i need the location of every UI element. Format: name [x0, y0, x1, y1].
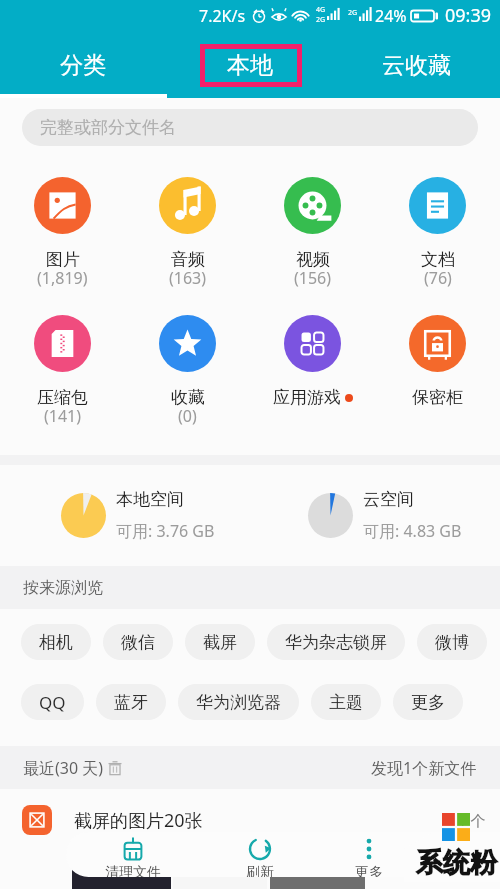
staticText: 微博: [435, 632, 469, 653]
staticText: 本地: [227, 51, 273, 80]
button[interactable]: 相机: [21, 624, 91, 660]
staticText: 华为浏览器: [196, 692, 281, 713]
staticText: (76): [424, 267, 452, 289]
staticText: QQ: [39, 691, 66, 714]
staticText: 按来源浏览: [23, 578, 103, 598]
button[interactable]: 图片: [0, 177, 125, 292]
button[interactable]: 华为浏览器: [178, 684, 299, 720]
button[interactable]: 视频: [250, 177, 375, 292]
staticText: 本地空间: [116, 489, 184, 510]
staticText: (0): [178, 405, 197, 427]
staticText: 图片: [46, 249, 80, 270]
staticText: 截屏: [203, 632, 237, 653]
staticText: 更多: [355, 864, 383, 877]
staticText: 云空间: [363, 489, 414, 510]
staticText: 微信: [121, 632, 155, 653]
button[interactable]: 主题: [311, 684, 381, 720]
staticText: 相机: [39, 632, 73, 653]
button[interactable]: 蓝牙: [96, 684, 166, 720]
staticText: 主题: [329, 692, 363, 713]
button[interactable]: 云收藏: [333, 34, 500, 96]
staticText: 7.2K/s: [199, 5, 246, 27]
staticText: 华为杂志锁屏: [285, 632, 387, 653]
staticText: 云收藏: [382, 51, 451, 80]
staticText: 系统粉: [416, 846, 497, 880]
staticText: 分类: [60, 51, 106, 80]
button[interactable]: 截屏: [185, 624, 255, 660]
staticText: 可用: 4.83 GB: [363, 520, 462, 542]
staticText: 应用游戏: [273, 387, 341, 408]
button[interactable]: 分类: [0, 34, 166, 96]
staticText: 发现1个新文件: [371, 757, 477, 779]
staticText: 收藏: [171, 387, 205, 408]
button[interactable]: 压缩包: [0, 315, 125, 430]
staticText: 压缩包: [37, 387, 88, 408]
button[interactable]: 刷新: [200, 832, 319, 877]
staticText: (156): [294, 267, 332, 289]
button[interactable]: 应用游戏: [250, 315, 375, 408]
staticText: 音频: [171, 249, 205, 270]
button[interactable]: 华为杂志锁屏: [267, 624, 405, 660]
button[interactable]: 完整或部分文件名: [22, 109, 478, 146]
staticText: (141): [44, 405, 82, 427]
staticText: 1 个: [458, 810, 486, 830]
staticText: 2G: [348, 8, 358, 18]
staticText: 09:39: [445, 3, 492, 28]
button[interactable]: 本地空间: [61, 489, 307, 542]
button[interactable]: 本地: [166, 34, 333, 96]
staticText: 可用: 3.76 GB: [116, 520, 215, 542]
staticText: 更多: [411, 692, 445, 713]
staticText: 2G: [316, 15, 326, 25]
staticText: 24%: [375, 5, 407, 27]
staticText: 完整或部分文件名: [40, 117, 176, 138]
staticText: 清理文件: [105, 864, 161, 877]
button[interactable]: QQ: [21, 684, 84, 720]
button[interactable]: 微博: [417, 624, 487, 660]
button[interactable]: 音频: [125, 177, 250, 292]
button[interactable]: 更多: [319, 832, 419, 877]
staticText: 蓝牙: [114, 692, 148, 713]
staticText: 文档: [421, 249, 455, 270]
button[interactable]: 收藏: [125, 315, 250, 430]
button[interactable]: 微信: [103, 624, 173, 660]
button[interactable]: 截屏的图片20张: [22, 789, 486, 851]
button[interactable]: 清理文件: [66, 832, 200, 877]
staticText: 截屏的图片20张: [74, 808, 203, 833]
staticText: 视频: [296, 249, 330, 270]
staticText: 刷新: [246, 864, 274, 877]
button[interactable]: 更多: [393, 684, 463, 720]
button[interactable]: 保密柜: [375, 315, 500, 408]
button[interactable]: 文档: [375, 177, 500, 292]
button[interactable]: 云空间: [308, 489, 500, 542]
staticText: (1,819): [37, 267, 88, 289]
staticText: 4G: [316, 5, 326, 15]
staticText: 保密柜: [412, 387, 463, 408]
button[interactable]: Clear recent files: [106, 759, 124, 777]
staticText: (163): [169, 267, 207, 289]
staticText: 最近(30 天): [23, 757, 104, 779]
